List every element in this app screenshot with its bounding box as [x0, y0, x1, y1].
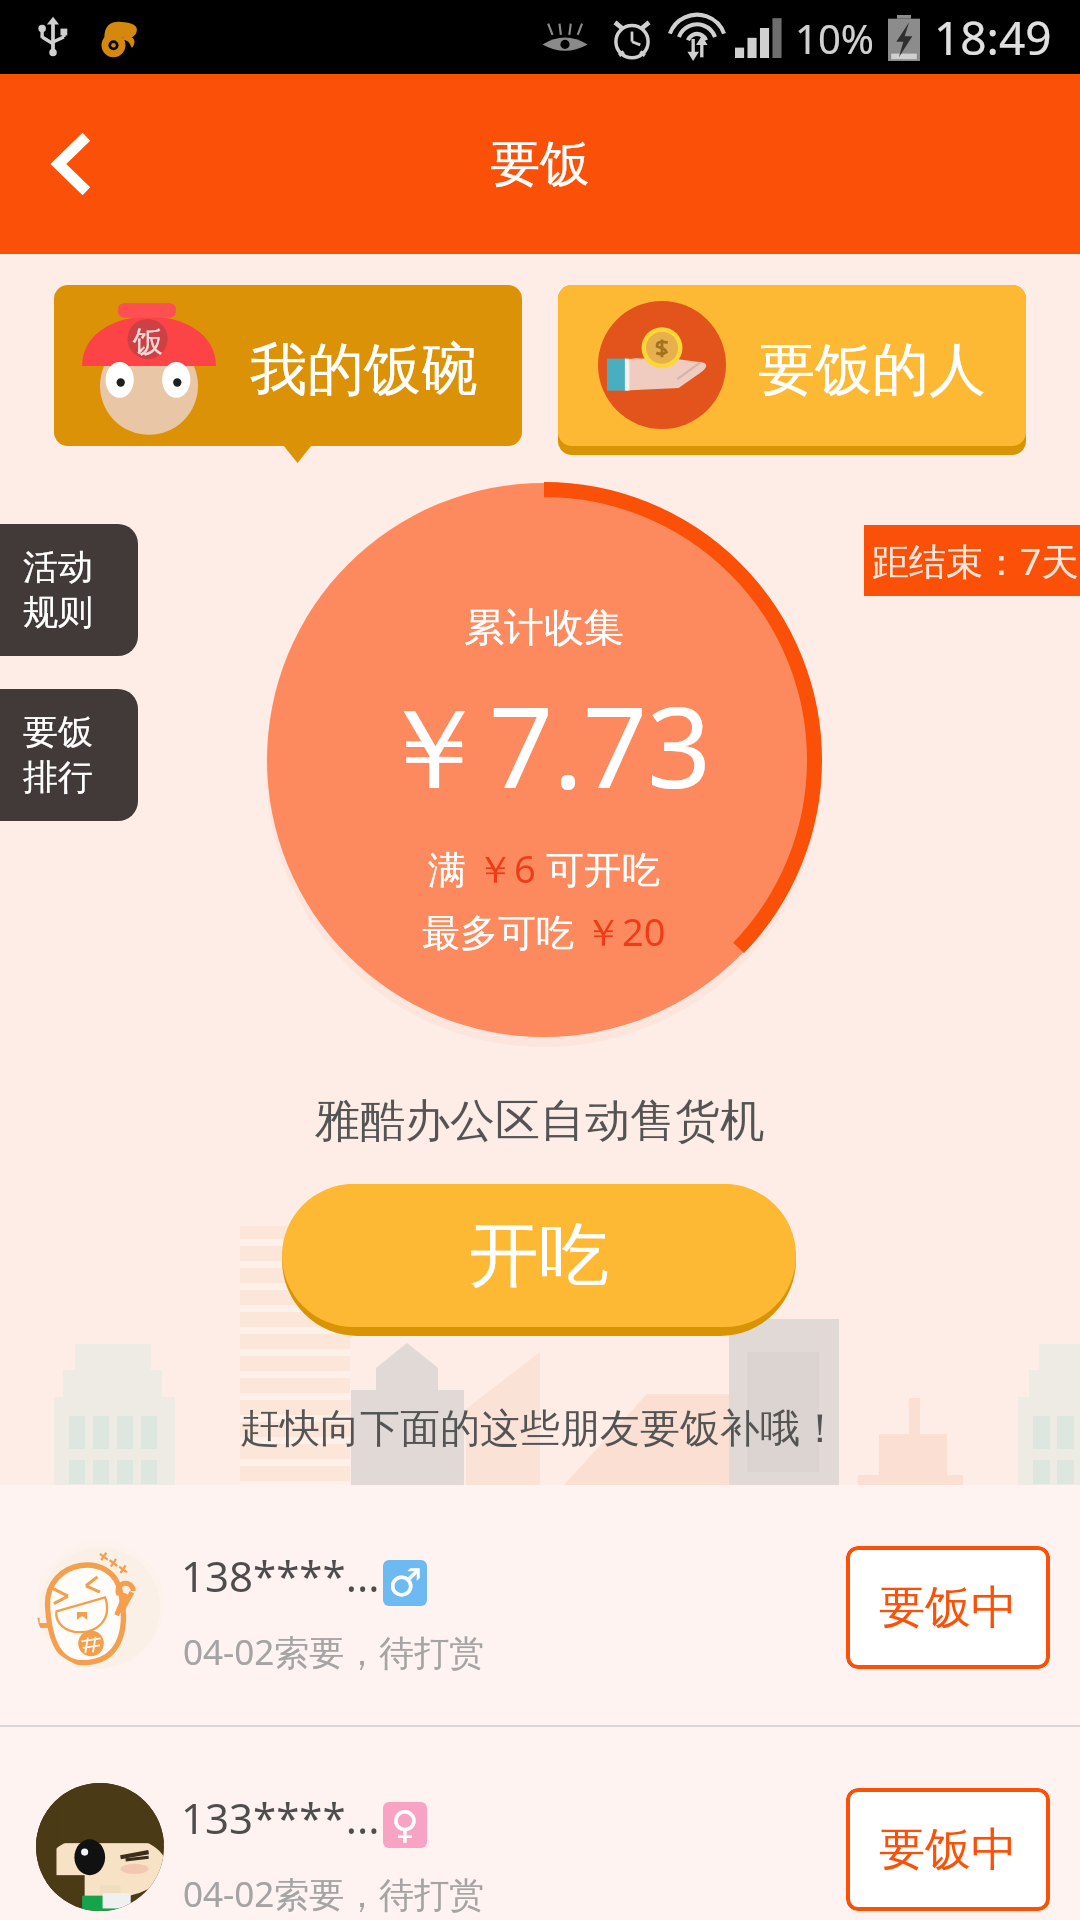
button[interactable]: 活动: [0, 524, 138, 656]
staticText: ￥6: [476, 842, 536, 894]
staticText: 要饭中: [879, 1579, 1017, 1637]
staticText: 开吃: [469, 1212, 609, 1300]
staticText: 138****...: [181, 1547, 380, 1604]
staticText: 最多可吃: [422, 905, 584, 957]
staticText: 饭: [133, 323, 163, 361]
staticText: 累计收集: [266, 602, 822, 652]
staticText: 要饭: [23, 710, 93, 754]
button[interactable]: 距结束：7天: [864, 525, 1080, 596]
staticText: 要饭的人: [758, 334, 986, 406]
staticText: 距结束：7天: [872, 535, 1079, 586]
staticText: ♂: [388, 1561, 423, 1605]
staticText: 要饭中: [879, 1821, 1017, 1879]
staticText: 要饭: [490, 133, 590, 196]
button[interactable]: 要饭的人: [558, 285, 1026, 446]
button[interactable]: 开吃: [282, 1184, 796, 1327]
button[interactable]: 要饭: [0, 689, 138, 821]
staticText: 雅酷办公区自动售货机: [0, 1093, 1080, 1150]
staticText: 04-02索要，待打赏: [183, 1870, 485, 1918]
staticText: 赶快向下面的这些朋友要饭补哦！: [0, 1403, 1080, 1453]
staticText: 18:49: [934, 6, 1052, 69]
staticText: 活动: [23, 545, 93, 589]
staticText: 满: [428, 842, 476, 894]
staticText: 规则: [23, 590, 93, 634]
button[interactable]: 要饭中: [846, 1788, 1050, 1911]
staticText: 可开吃: [536, 842, 660, 894]
button[interactable]: 138****...: [0, 1485, 1080, 1725]
button[interactable]: 饭: [54, 285, 522, 446]
staticText: 我的饭碗: [250, 334, 478, 406]
staticText: ￥7.73: [266, 668, 822, 821]
button[interactable]: 要饭中: [846, 1546, 1050, 1669]
staticText: ￥20: [584, 905, 666, 957]
staticText: 排行: [23, 755, 93, 799]
staticText: 04-02索要，待打赏: [183, 1628, 485, 1676]
staticText: ♀: [391, 1803, 419, 1847]
staticText: 133****...: [181, 1789, 380, 1846]
button[interactable]: 133****...: [0, 1727, 1080, 1920]
staticText: 10%: [795, 11, 874, 65]
button[interactable]: Back: [22, 114, 122, 214]
